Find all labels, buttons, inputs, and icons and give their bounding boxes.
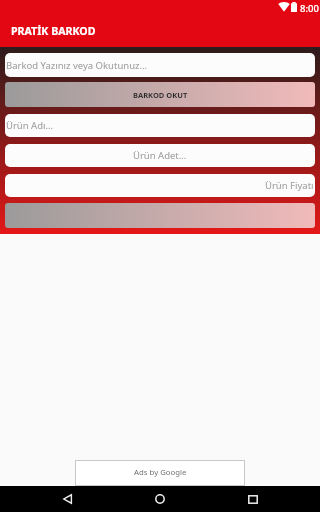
button[interactable]: Back (47, 486, 87, 512)
button[interactable]: Ads by Google (76, 461, 244, 485)
staticText: Barkod Yazınız veya Okutunuz... (6, 59, 148, 72)
button[interactable] (5, 203, 315, 228)
button[interactable]: Ürün Fiyatı (5, 174, 315, 197)
staticText: PRATİK BARKOD (11, 24, 96, 38)
staticText: BARKOD OKUT (133, 90, 188, 100)
button[interactable]: Barkod Yazınız veya Okutunuz... (5, 53, 315, 77)
staticText: Ürün Adı... (6, 119, 54, 132)
staticText: Ürün Fiyatı (265, 179, 314, 192)
button[interactable]: Recent apps (233, 486, 273, 512)
button[interactable]: Ürün Adet... (5, 144, 315, 167)
button[interactable]: Ürün Adı... (5, 114, 315, 137)
staticText: Ads by Google (134, 467, 187, 478)
button[interactable]: Home (140, 486, 180, 512)
staticText: 8:00 (300, 2, 319, 15)
staticText: Ürün Adet... (133, 149, 187, 162)
button[interactable]: BARKOD OKUT (5, 82, 315, 107)
